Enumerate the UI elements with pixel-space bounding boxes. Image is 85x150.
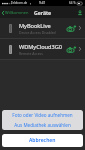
button[interactable]: Abbrechen: [2, 134, 83, 147]
button[interactable]: MyBookLive: [0, 18, 85, 38]
staticText: Abbrechen: [29, 137, 56, 144]
staticText: Aus Mediathek auswählen: [14, 122, 71, 128]
button[interactable]: Aus Mediathek auswählen: [2, 120, 83, 130]
staticText: Device Access Disabled: [19, 30, 56, 35]
staticText: WDMyCloud3G0: [19, 43, 62, 51]
button[interactable]: Willkommen: [1, 8, 30, 17]
button[interactable]: WDMyCloud3G0: [0, 39, 85, 59]
staticText: 9:41: [39, 1, 46, 5]
staticText: Willkommen: [5, 10, 29, 15]
button[interactable]: Add photo: [67, 45, 76, 54]
staticText: Geräte: [34, 9, 52, 16]
button[interactable]: Download: [75, 8, 84, 17]
staticText: Foto oder Video aufnehmen: [12, 112, 73, 118]
staticText: 64 %: [69, 1, 76, 5]
staticText: Telekom.de: [11, 1, 28, 5]
staticText: MyBookLive: [19, 22, 51, 30]
button[interactable]: Add photo: [67, 24, 76, 33]
staticText: Remote Access: [19, 51, 43, 56]
button[interactable]: Foto oder Video aufnehmen: [2, 110, 83, 120]
